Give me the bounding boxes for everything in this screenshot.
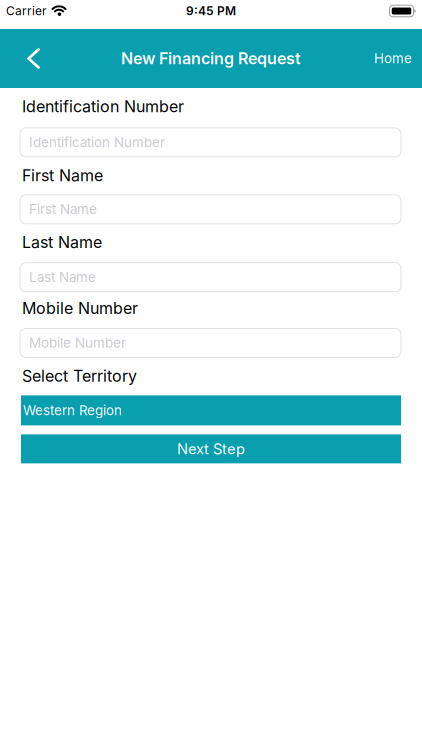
button[interactable]: Home <box>374 51 422 66</box>
staticText: Home <box>374 51 412 66</box>
staticText: Last Name <box>22 233 102 252</box>
button[interactable]: Western Region <box>21 395 401 425</box>
staticText: First Name <box>29 201 97 217</box>
staticText: New Financing Request <box>121 49 301 68</box>
staticText: Western Region <box>23 402 122 418</box>
staticText: 9:45 PM <box>186 4 236 18</box>
staticText: Select Territory <box>22 366 137 385</box>
staticText: First Name <box>22 166 103 185</box>
button[interactable]: Back <box>0 48 52 69</box>
staticText: Last Name <box>29 269 96 285</box>
staticText: Identification Number <box>22 97 184 116</box>
staticText: Mobile Number <box>22 299 138 317</box>
staticText: Next Step <box>177 440 245 457</box>
staticText: Carrier <box>6 4 47 18</box>
staticText: Mobile Number <box>29 335 126 351</box>
button[interactable]: Next Step <box>21 434 401 463</box>
staticText: Identification Number <box>29 134 165 150</box>
